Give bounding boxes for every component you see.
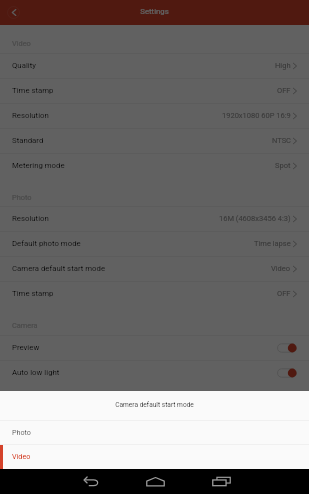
button[interactable]: Back <box>5 4 22 21</box>
staticText: Resolution <box>12 214 49 223</box>
button[interactable]: Default photo mode <box>0 231 309 256</box>
staticText: Quality <box>12 61 36 70</box>
button[interactable]: Metering mode <box>0 153 309 178</box>
staticText: Camera <box>12 321 38 330</box>
staticText: Spot <box>275 161 291 170</box>
staticText: 16M (4608x3456 4:3) <box>219 214 291 223</box>
button[interactable]: Back <box>67 469 112 494</box>
button[interactable]: Standard <box>0 128 309 153</box>
staticText: Time lapse <box>254 239 291 248</box>
staticText: Standard <box>12 136 44 145</box>
staticText: Camera default start mode <box>12 264 106 273</box>
button[interactable]: Preview <box>0 335 309 360</box>
button[interactable]: Resolution <box>0 206 309 231</box>
staticText: Photo <box>12 428 31 436</box>
button[interactable]: Time stamp <box>0 281 309 306</box>
staticText: OFF <box>277 86 291 95</box>
staticText: Photo <box>12 193 32 202</box>
staticText: Camera default start mode <box>0 401 309 409</box>
staticText: NTSC <box>272 136 291 145</box>
staticText: Video <box>12 39 31 48</box>
staticText: Resolution <box>12 111 49 120</box>
button[interactable]: Camera default start mode <box>0 256 309 281</box>
button[interactable]: Quality <box>0 53 309 78</box>
staticText: Auto low light <box>12 368 60 377</box>
button[interactable]: Resolution <box>0 103 309 128</box>
button[interactable]: Video <box>0 445 309 469</box>
staticText: Settings <box>0 7 309 16</box>
button[interactable]: Photo <box>0 421 309 445</box>
button[interactable]: Time stamp <box>0 78 309 103</box>
staticText: Video <box>271 264 291 273</box>
staticText: 1920x1080 60P 16:9 <box>222 111 291 120</box>
staticText: High <box>275 61 291 70</box>
staticText: Metering mode <box>12 161 65 170</box>
button[interactable]: Auto low light <box>0 360 309 385</box>
staticText: Video <box>12 452 31 460</box>
button[interactable]: Recent apps <box>199 469 244 494</box>
staticText: Time stamp <box>12 86 54 95</box>
staticText: Preview <box>12 343 40 352</box>
button[interactable]: Home <box>133 469 178 494</box>
staticText: Time stamp <box>12 289 54 298</box>
staticText: Default photo mode <box>12 239 81 248</box>
staticText: OFF <box>277 289 291 298</box>
